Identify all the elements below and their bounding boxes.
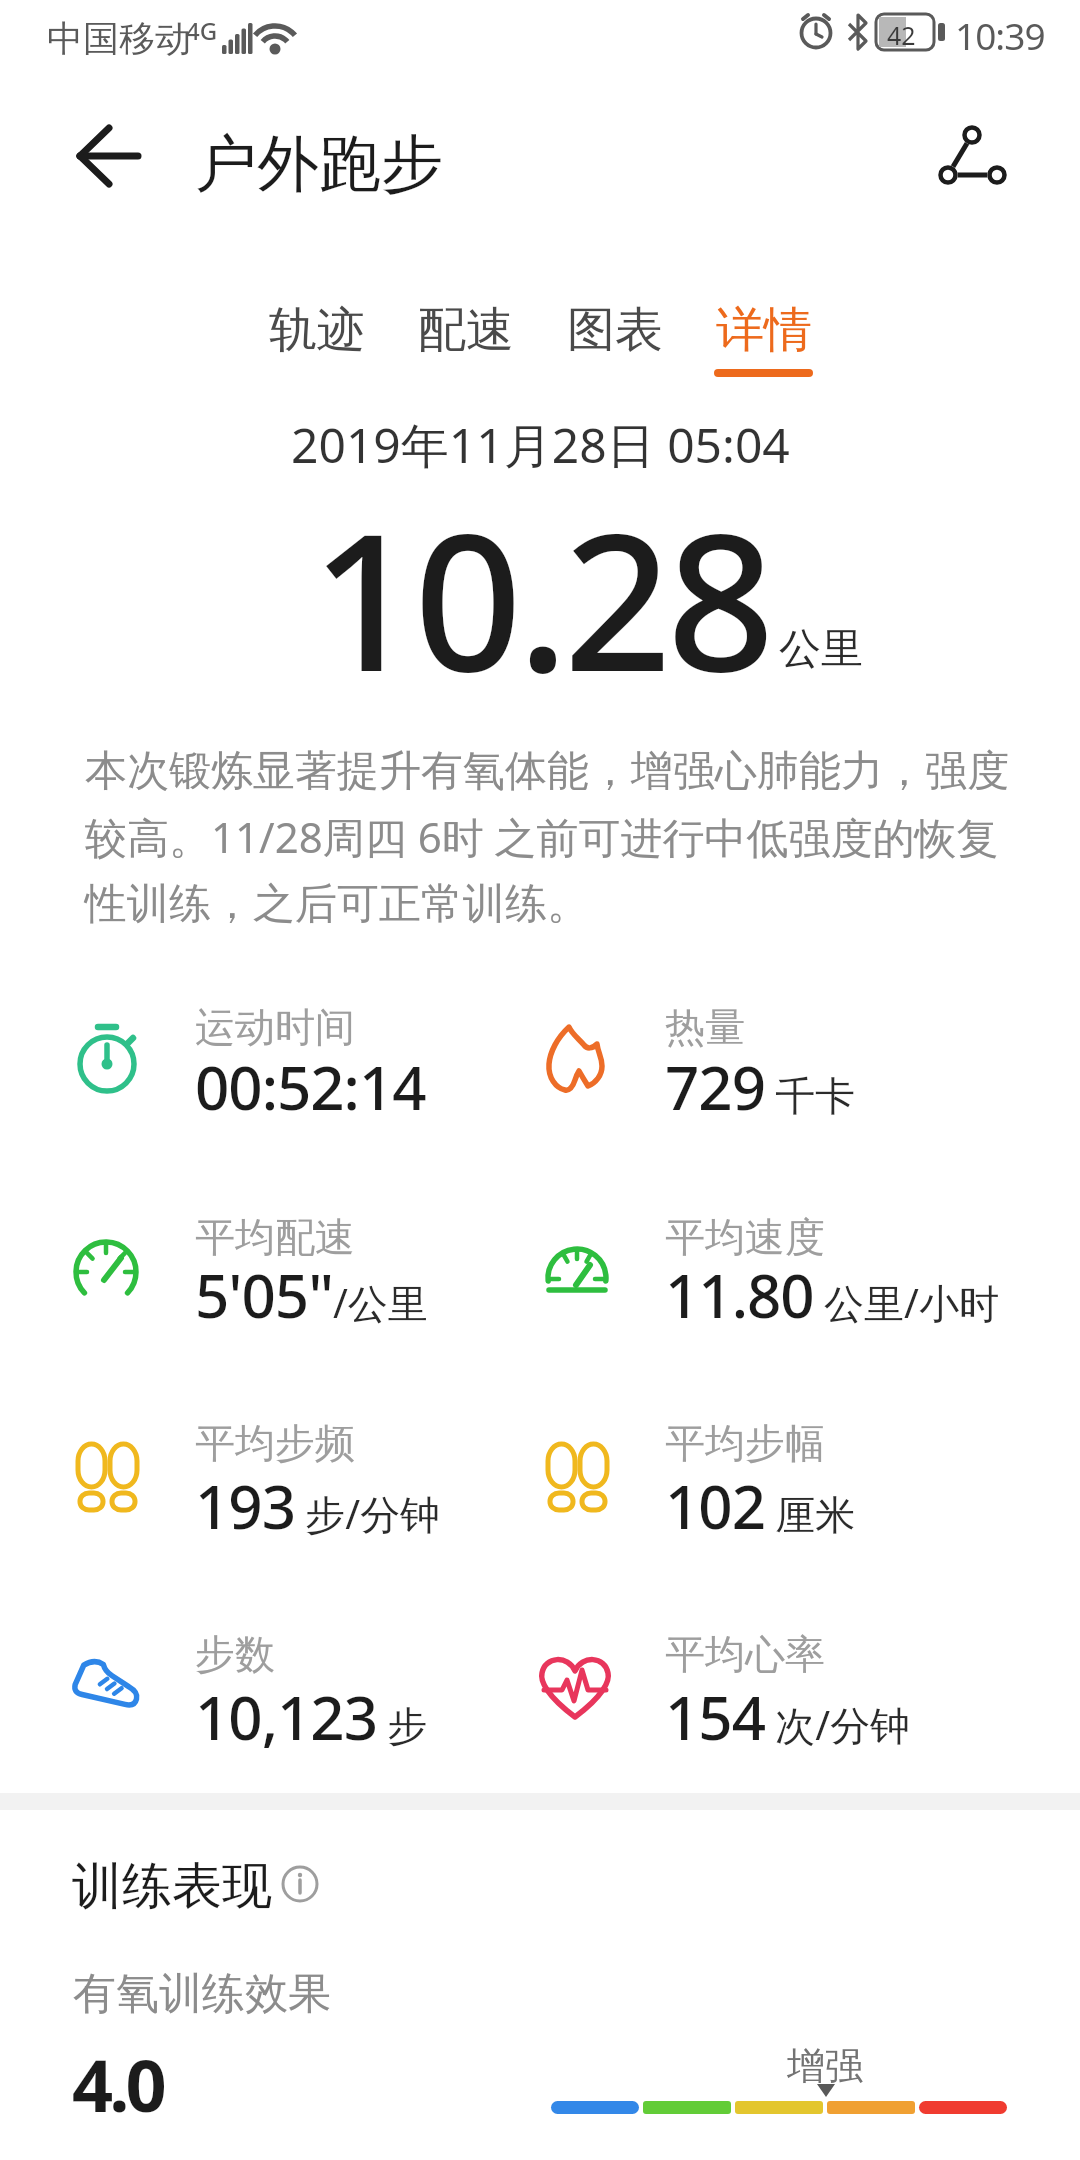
staticText: 10:39 xyxy=(955,10,1045,60)
staticText: 详情 xyxy=(716,300,812,360)
staticText: 运动时间 xyxy=(195,1002,355,1052)
staticText: 102 厘米 xyxy=(665,1465,856,1547)
staticText: 00:52:14 xyxy=(195,1046,426,1128)
staticText: 10,123 步 xyxy=(195,1676,428,1758)
button[interactable]: 图表 xyxy=(565,300,664,377)
staticText: 本次锻炼显著提升有氧体能，增强心肺能力，强度 较高。11/28周四 6时 之前可… xyxy=(85,745,1009,930)
staticText: 步数 xyxy=(195,1629,275,1679)
button[interactable] xyxy=(55,115,155,205)
staticText: 5'05"/公里 xyxy=(195,1254,428,1336)
button[interactable] xyxy=(280,1864,320,1904)
staticText: 平均步频 xyxy=(195,1418,355,1468)
button[interactable] xyxy=(920,110,1025,205)
button[interactable]: 轨迹 xyxy=(267,300,366,377)
staticText: 平均速度 xyxy=(665,1212,825,1262)
staticText: 增强 xyxy=(787,2042,863,2090)
staticText: 有氧训练效果 xyxy=(73,1967,331,2021)
staticText: 配速 xyxy=(418,300,514,360)
staticText: 轨迹 xyxy=(269,300,365,360)
staticText: 4.0 xyxy=(72,2035,163,2133)
staticText: 公里 xyxy=(779,623,863,676)
staticText: 图表 xyxy=(567,300,663,360)
staticText: 训练表现 xyxy=(72,1855,272,1918)
button[interactable]: 详情 xyxy=(714,300,813,377)
staticText: 户外跑步 xyxy=(195,125,443,203)
staticText: 11.80 公里/小时 xyxy=(665,1254,999,1336)
staticText: 平均配速 xyxy=(195,1212,355,1262)
staticText: 193 步/分钟 xyxy=(195,1465,441,1547)
staticText: 4G xyxy=(186,14,218,47)
staticText: 平均心率 xyxy=(665,1629,825,1679)
staticText: 729 千卡 xyxy=(665,1046,856,1128)
staticText: 中国移动 xyxy=(47,16,191,61)
staticText: 平均步幅 xyxy=(665,1418,825,1468)
staticText: 42 xyxy=(887,18,916,52)
staticText: 154 次/分钟 xyxy=(665,1676,911,1758)
staticText: 热量 xyxy=(665,1002,745,1052)
staticText: 2019年11月28日 05:04 xyxy=(291,412,790,478)
button[interactable]: 配速 xyxy=(416,300,515,377)
staticText: 10.28 xyxy=(311,469,770,726)
